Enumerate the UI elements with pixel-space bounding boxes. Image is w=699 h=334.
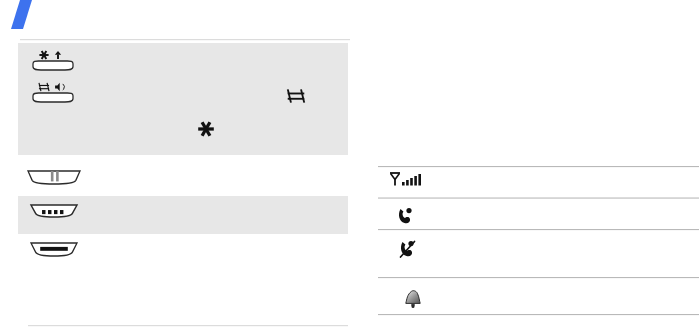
button[interactable]: Phone keys and display indicators refere… (0, 0, 699, 334)
